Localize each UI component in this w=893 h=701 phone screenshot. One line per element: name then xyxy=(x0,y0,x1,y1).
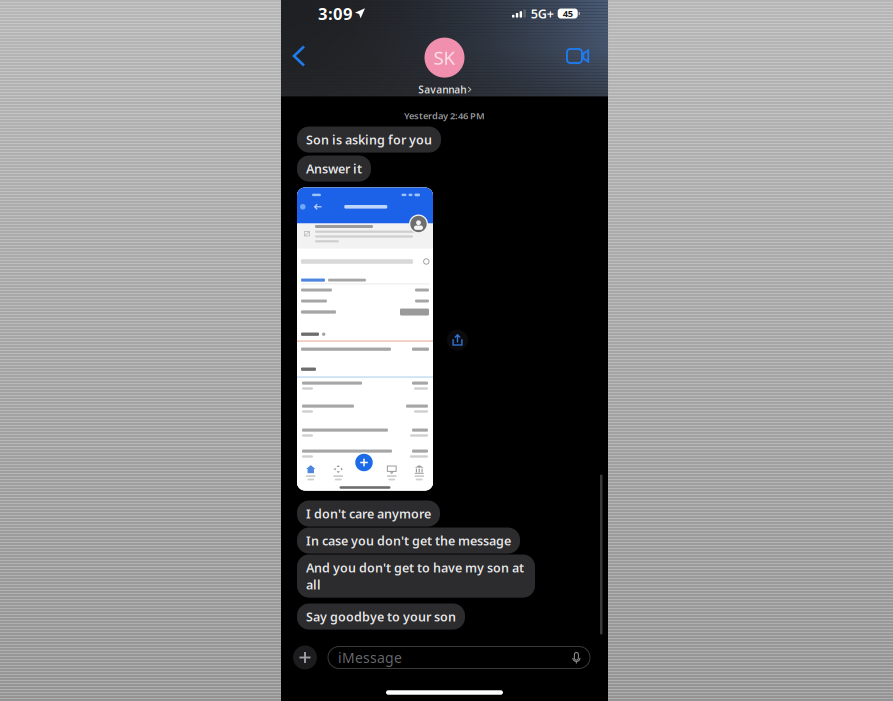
button[interactable]: iMessage xyxy=(328,646,590,668)
button[interactable]: Add attachment xyxy=(293,645,317,669)
staticText: Say goodbye to your son xyxy=(306,608,456,625)
button[interactable]: Back xyxy=(281,35,314,76)
staticText: iMessage xyxy=(338,648,402,667)
staticText: 5G+ xyxy=(531,5,554,22)
staticText: I don't care anymore xyxy=(306,505,431,522)
button[interactable]: FaceTime video call xyxy=(557,38,608,74)
staticText: In case you don't get the message xyxy=(306,532,511,549)
staticText: Savannah xyxy=(418,83,466,96)
button[interactable]: Share xyxy=(447,329,468,350)
staticText: 45 xyxy=(563,7,573,20)
staticText: 3:09 xyxy=(318,2,353,25)
button[interactable]: SK xyxy=(418,32,471,90)
staticText: Yesterday 2:46 PM xyxy=(404,109,485,122)
staticText: Answer it xyxy=(306,160,362,177)
staticText: And you don't get to have my son at all xyxy=(306,559,524,593)
staticText: SK xyxy=(433,45,455,70)
staticText: Son is asking for you xyxy=(306,131,432,148)
